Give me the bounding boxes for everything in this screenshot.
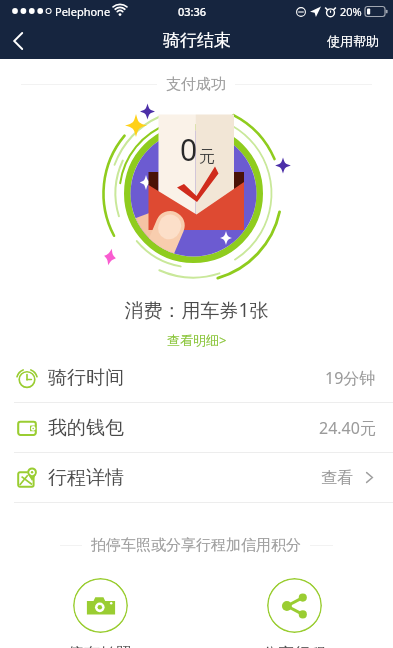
staticText: 19分钟 — [325, 367, 376, 389]
staticText: 骑行时间 — [48, 366, 124, 390]
button[interactable]: Back — [0, 22, 37, 59]
staticText: 拍停车照或分享行程加信用积分 — [91, 536, 301, 555]
staticText: 使用帮助 — [327, 33, 379, 49]
button[interactable]: 行程详情 — [0, 453, 393, 502]
button[interactable]: 分享行程 — [258, 578, 330, 648]
button[interactable]: 我的钱包 — [0, 403, 393, 452]
staticText: Pelephone — [55, 4, 111, 19]
staticText: 消费：用车券1张 — [0, 297, 393, 323]
staticText: 我的钱包 — [48, 416, 124, 440]
staticText: 元 — [199, 147, 215, 167]
staticText: 分享行程 — [262, 644, 326, 648]
button[interactable]: 骑行时间 — [0, 353, 393, 402]
staticText: 查看 — [321, 468, 353, 488]
staticText: 骑行结束 — [163, 30, 231, 51]
staticText: 支付成功 — [166, 75, 226, 94]
staticText: 24.40元 — [319, 417, 376, 439]
staticText: 停车拍照 — [68, 644, 132, 648]
staticText: 行程详情 — [48, 466, 124, 490]
button[interactable]: 使用帮助 — [313, 23, 393, 59]
staticText: 0 — [180, 129, 198, 170]
staticText: 查看明细> — [167, 331, 227, 349]
staticText: 20% — [340, 4, 362, 19]
staticText: 03:36 — [178, 4, 207, 19]
button[interactable]: 查看明细> — [157, 329, 237, 351]
button[interactable]: 停车拍照 — [64, 578, 136, 648]
